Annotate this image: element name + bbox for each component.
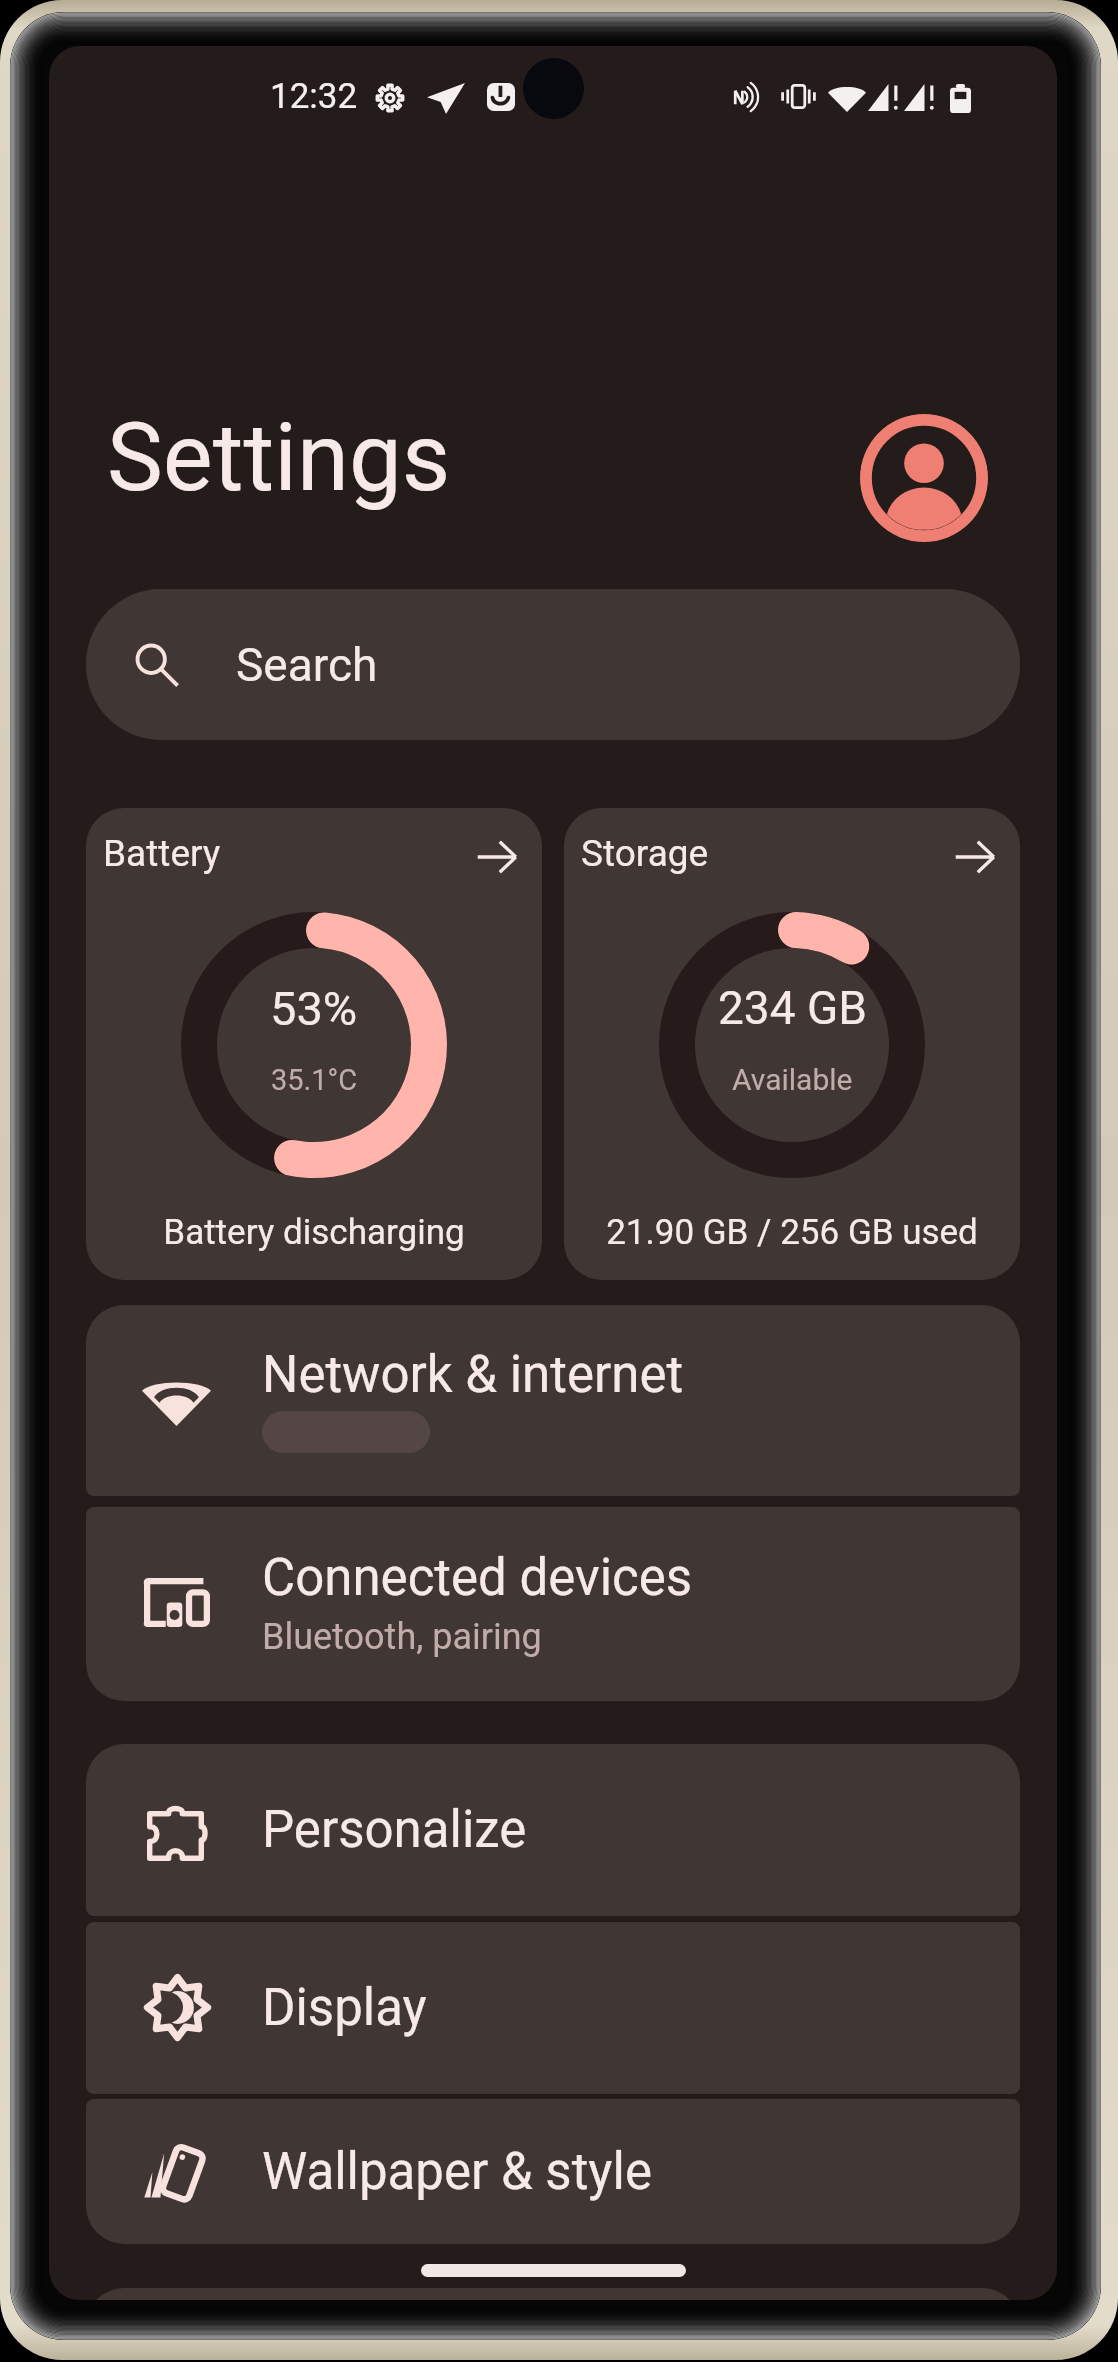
staticText: Settings: [107, 403, 451, 513]
staticText: Connected devices: [262, 1548, 693, 1608]
button[interactable]: Storage: [564, 808, 1020, 1280]
staticText: Display: [262, 1978, 427, 2038]
button[interactable]: [86, 2288, 1020, 2300]
staticText: Wallpaper & style: [262, 2142, 652, 2202]
button[interactable]: Connected devices: [86, 1507, 1020, 1701]
staticText: 21.90 GB / 256 GB used: [564, 1212, 1020, 1253]
button[interactable]: Search: [86, 589, 1020, 740]
staticText: Available: [732, 1062, 853, 1097]
staticText: Personalize: [262, 1800, 527, 1860]
staticText: 12:32: [270, 76, 358, 117]
staticText: 35.1°C: [271, 1063, 358, 1097]
staticText: Bluetooth, pairing: [262, 1616, 542, 1658]
staticText: Search: [236, 638, 378, 692]
button[interactable]: Account: [860, 414, 988, 542]
staticText: Battery discharging: [86, 1212, 542, 1253]
button[interactable]: Personalize: [86, 1744, 1020, 1916]
staticText: Network & internet: [262, 1345, 684, 1405]
staticText: Battery: [103, 832, 221, 875]
button[interactable]: Display: [86, 1922, 1020, 2094]
staticText: Storage: [581, 832, 709, 875]
staticText: 234 GB: [718, 981, 867, 1035]
button[interactable]: Network & internet: [86, 1305, 1020, 1496]
button[interactable]: Wallpaper & style: [86, 2099, 1020, 2244]
staticText: 53%: [270, 981, 358, 1036]
button[interactable]: Battery: [86, 808, 542, 1280]
